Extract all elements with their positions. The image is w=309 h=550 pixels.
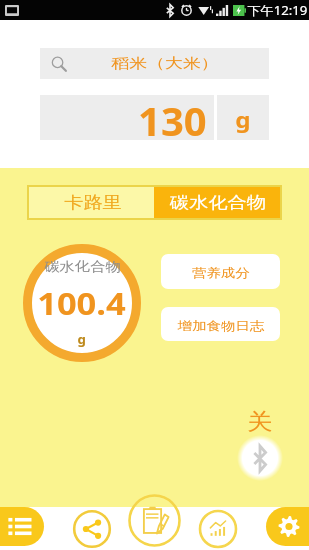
staticText: 关: [247, 408, 273, 436]
button[interactable]: 增加食物日志: [161, 307, 280, 341]
staticText: 碳水化合物: [44, 258, 121, 274]
button[interactable]: 碳水化合物: [154, 187, 280, 218]
staticText: 下午12:19: [247, 2, 308, 18]
staticText: 增加食物日志: [178, 318, 264, 333]
staticText: 碳水化合物: [170, 193, 266, 213]
button[interactable]: Share: [73, 510, 111, 548]
staticText: g: [78, 331, 86, 347]
button[interactable]: Bluetooth off: [232, 405, 288, 485]
staticText: 卡路里: [64, 193, 122, 213]
button[interactable]: 营养成分: [161, 254, 280, 289]
button[interactable]: g: [217, 95, 269, 140]
staticText: g: [235, 104, 251, 134]
button[interactable]: Settings: [266, 507, 309, 546]
staticText: 100.4: [37, 283, 127, 324]
staticText: 稻米（大米）: [111, 55, 219, 73]
button[interactable]: 碳水化合物: [23, 244, 141, 362]
button[interactable]: Statistics: [199, 510, 237, 548]
staticText: 营养成分: [192, 265, 250, 280]
button[interactable]: Add food log: [128, 494, 181, 547]
button[interactable]: Food list: [0, 507, 44, 546]
button[interactable]: 卡路里: [29, 187, 154, 218]
staticText: 130: [138, 93, 207, 138]
button[interactable]: 稻米（大米）: [40, 48, 269, 79]
button[interactable]: 130: [40, 95, 214, 140]
